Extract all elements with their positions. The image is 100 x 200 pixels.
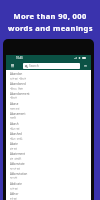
button[interactable]: Abash xyxy=(6,120,91,130)
button[interactable]: Abatement xyxy=(6,150,91,160)
staticText: 10:45 xyxy=(16,56,23,60)
staticText: Abate xyxy=(10,142,18,146)
staticText: ত্যাগ করা xyxy=(10,187,18,190)
button[interactable]: Abhor xyxy=(6,190,91,200)
staticText: Abdicate xyxy=(10,182,22,186)
staticText: Abandonment xyxy=(10,92,30,96)
staticText: words and meanings xyxy=(8,23,93,33)
staticText: অবনতি xyxy=(10,117,16,120)
staticText: Abashed xyxy=(10,132,22,136)
staticText: Search xyxy=(29,64,39,68)
staticText: পরিত্যাগ xyxy=(10,97,17,100)
button[interactable]: Voice search xyxy=(83,63,88,68)
button[interactable]: Abbreviate xyxy=(6,160,91,170)
staticText: More than 90, 000 xyxy=(13,11,87,21)
button[interactable]: Abandonment xyxy=(6,90,91,100)
staticText: Abase xyxy=(10,102,19,106)
staticText: Abandon xyxy=(10,72,23,76)
staticText: Abbreviation xyxy=(10,172,28,176)
staticText: ঘৃণা করা xyxy=(10,197,17,200)
staticText: সংক্ষেপ করা xyxy=(10,167,20,170)
button[interactable]: Abandoned xyxy=(6,80,91,90)
button[interactable]: Abasement xyxy=(6,110,91,120)
staticText: ত্যাগ করা, পরিত্যাগ xyxy=(10,77,26,80)
staticText: হ্রাস, হ্রাসপ্রাপ্তি xyxy=(10,157,22,160)
staticText: Abhor xyxy=(10,192,19,196)
staticText: Abatement xyxy=(10,152,26,156)
button[interactable]: Abashed xyxy=(6,130,91,140)
staticText: Abbreviate xyxy=(10,162,25,166)
staticText: অবনত করা xyxy=(10,107,20,110)
button[interactable]: Abate xyxy=(6,140,91,150)
staticText: লজ্জিত, হতবুদ্ধি xyxy=(10,137,23,140)
staticText: পরিত্যক্ত, নির্জন xyxy=(10,87,23,90)
button[interactable]: Abdicate xyxy=(6,180,91,190)
button[interactable]: Abbreviation xyxy=(6,170,91,180)
button[interactable]: Search xyxy=(23,63,80,69)
staticText: লজ্জিত করা xyxy=(10,127,20,130)
button[interactable]: Menu xyxy=(10,63,15,68)
staticText: Abandoned xyxy=(10,82,26,86)
button[interactable]: Abase xyxy=(6,100,91,110)
staticText: সংক্ষেপণ xyxy=(10,177,18,180)
staticText: হ্রাস করা xyxy=(10,147,17,150)
button[interactable]: Abandon xyxy=(6,70,91,80)
staticText: Abash xyxy=(10,122,19,126)
staticText: Abasement xyxy=(10,112,26,116)
